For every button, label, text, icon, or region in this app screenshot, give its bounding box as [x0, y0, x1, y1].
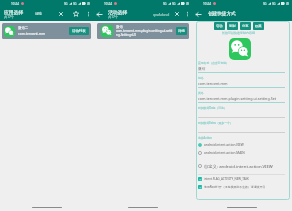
- button[interactable]: More options: [186, 11, 189, 17]
- button[interactable]: Close: [58, 11, 64, 17]
- staticText: 10:24: [11, 2, 20, 6]
- staticText: 启动: [216, 24, 223, 28]
- button[interactable]: Favorite: [73, 11, 79, 17]
- staticText: android.intent.action.VIEW: [204, 143, 244, 147]
- button[interactable]: 附加数据Extra（最多一个）: [198, 121, 285, 136]
- staticText: 10:24: [104, 2, 113, 6]
- staticText: com.tencent.mm: [18, 31, 46, 36]
- staticText: 49: [186, 2, 189, 6]
- staticText: 活动列表: [72, 29, 86, 33]
- button[interactable]: android.intent.action.VIEW: [198, 143, 285, 147]
- button[interactable]: 应用名称（点击可复制）: [198, 61, 285, 76]
- staticText: qwAdasd: [153, 12, 170, 17]
- button[interactable]: 附加数据Data（可选）: [198, 106, 285, 121]
- staticText: com.tencent.mm.plugin.setting.ui.setting…: [116, 29, 174, 37]
- button[interactable]: intent.FLAG_ACTIVITY_NEW_TASK: [198, 177, 285, 181]
- staticText: 微信: [116, 25, 123, 29]
- staticText: 类名: [198, 91, 204, 95]
- staticText: 创建快捷方式: [208, 11, 236, 17]
- button[interactable]: 收藏: [253, 22, 264, 30]
- button[interactable]: 清除: [34, 10, 43, 18]
- staticText: 49: [286, 2, 289, 6]
- staticText: com.tencent.mm: [198, 81, 228, 86]
- button[interactable]: 分享: [240, 22, 251, 30]
- button[interactable]: Clear: [174, 11, 180, 17]
- button[interactable]: 复制: [227, 22, 238, 30]
- staticText: 使用Root打开（没有权限则不生效）请谨慎开启: [204, 185, 266, 189]
- button[interactable]: More options: [87, 11, 90, 17]
- staticText: 共17个: [108, 15, 119, 19]
- staticText: 5G: [263, 2, 267, 6]
- button[interactable]: 微信二: [2, 23, 91, 39]
- staticText: 复制: [229, 24, 236, 28]
- staticText: 活动选择: [108, 9, 128, 15]
- staticText: 详情: [178, 29, 185, 33]
- button[interactable]: 使用Root打开（没有权限则不生效）请谨慎开启: [198, 185, 285, 189]
- staticText: 分享: [242, 24, 249, 28]
- staticText: 长按可以快速复制内容哦: [222, 31, 255, 35]
- staticText: 5G: [272, 2, 276, 6]
- staticText: intent.FLAG_ACTIVITY_NEW_TASK: [204, 177, 249, 181]
- staticText: 选择Action: [198, 136, 212, 140]
- staticText: 微信二: [18, 26, 29, 30]
- staticText: 微信: [198, 66, 206, 71]
- button[interactable]: 启动: [214, 22, 225, 30]
- staticText: 包名: [198, 76, 204, 80]
- staticText: 应用名称（点击可复制）: [198, 61, 229, 65]
- staticText: 清除: [35, 12, 42, 16]
- staticText: 49: [87, 2, 90, 6]
- button[interactable]: 包名: [198, 76, 285, 91]
- staticText: 收藏: [255, 24, 262, 28]
- staticText: 10:24: [203, 2, 212, 6]
- staticText: 5G: [172, 2, 176, 6]
- staticText: android.intent.action.MAIN: [204, 151, 245, 155]
- staticText: 共17个: [4, 15, 15, 19]
- button[interactable]: Back: [96, 11, 103, 18]
- button[interactable]: 类名: [198, 91, 285, 106]
- staticText: com.tencent.mm.plugin.setting.ui.setting…: [198, 96, 277, 101]
- button[interactable]: 微信: [97, 23, 189, 39]
- button[interactable]: 活动列表: [69, 27, 89, 35]
- button[interactable]: 详情: [176, 27, 187, 35]
- button[interactable]: 自定义: android.intent.action.VIEW: [198, 163, 285, 169]
- staticText: 5G: [163, 2, 167, 6]
- staticText: 5G: [73, 2, 77, 6]
- staticText: 附加数据Data（可选）: [198, 106, 227, 110]
- staticText: 附加数据Extra（最多一个）: [198, 121, 233, 125]
- staticText: 5G: [64, 2, 68, 6]
- button[interactable]: android.intent.action.MAIN: [198, 151, 285, 155]
- staticText: 应用选择: [4, 9, 24, 15]
- staticText: 自定义: android.intent.action.VIEW: [204, 163, 273, 169]
- button[interactable]: Back: [195, 11, 202, 18]
